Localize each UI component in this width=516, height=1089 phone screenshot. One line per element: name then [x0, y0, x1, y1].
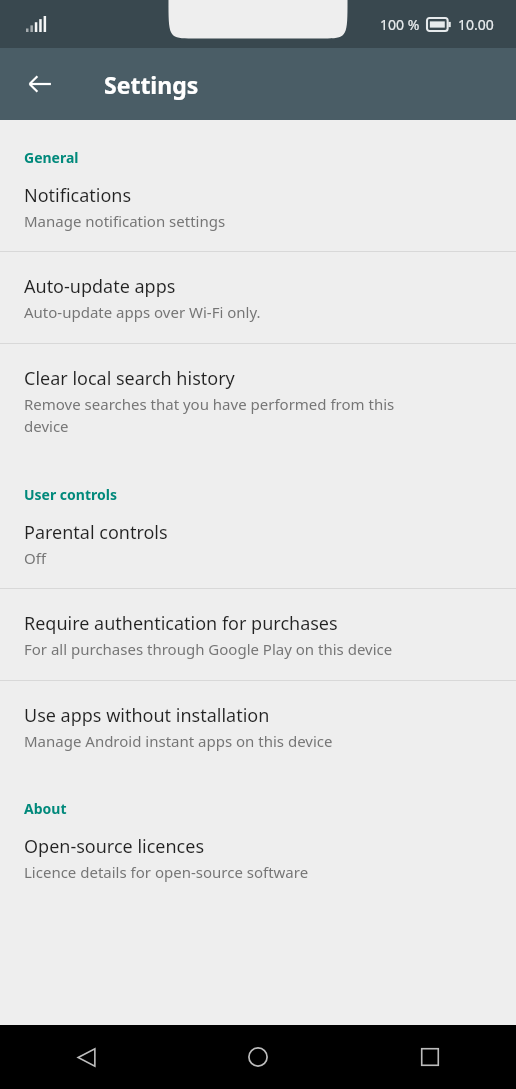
staticText: Parental controls — [24, 520, 168, 545]
staticText: 10.00 — [458, 15, 494, 34]
staticText: Auto-update apps — [24, 274, 176, 299]
button[interactable]: Open-source licences — [0, 828, 516, 896]
staticText: User controls — [24, 485, 117, 504]
staticText: Use apps without installation — [24, 703, 270, 728]
button[interactable]: Parental controls — [0, 514, 516, 588]
staticText: Require authentication for purchases — [24, 611, 338, 636]
staticText: Manage notification settings — [24, 211, 226, 231]
button[interactable]: Notifications — [0, 177, 516, 251]
staticText: Licence details for open-source software — [24, 862, 309, 882]
staticText: For all purchases through Google Play on… — [24, 639, 393, 659]
staticText: Auto-update apps over Wi-Fi only. — [24, 302, 261, 322]
staticText: About — [24, 799, 67, 818]
staticText: Settings — [104, 69, 199, 100]
staticText: 100 % — [380, 15, 420, 34]
staticText: Remove searches that you have performed … — [24, 394, 395, 437]
button[interactable]: Auto-update apps — [0, 252, 516, 343]
button[interactable]: Back — [16, 60, 64, 108]
button[interactable]: Recent apps — [344, 1025, 516, 1089]
button[interactable]: Require authentication for purchases — [0, 589, 516, 680]
button[interactable]: Use apps without installation — [0, 681, 516, 771]
staticText: Clear local search history — [24, 366, 235, 391]
staticText: Notifications — [24, 183, 132, 208]
staticText: General — [24, 148, 79, 167]
button[interactable]: Home — [172, 1025, 344, 1089]
button[interactable]: Clear local search history — [0, 344, 516, 457]
staticText: Off — [24, 548, 47, 568]
button[interactable]: Back — [0, 1025, 172, 1089]
staticText: Manage Android instant apps on this devi… — [24, 731, 333, 751]
staticText: Open-source licences — [24, 834, 204, 859]
